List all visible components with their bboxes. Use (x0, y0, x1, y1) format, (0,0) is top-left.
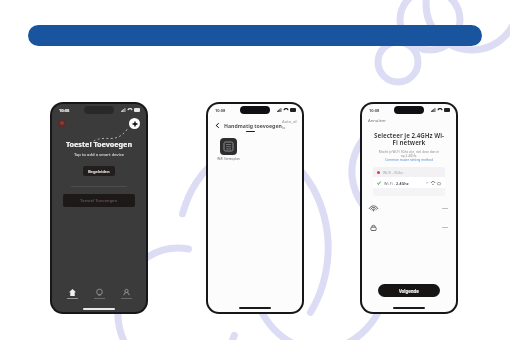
staticText: WiFi Stereoplan (215, 157, 242, 161)
staticText: 10:08 (59, 108, 70, 113)
staticText: Handmatig toevoegen (224, 122, 282, 129)
button[interactable]: Begeleiden (83, 166, 115, 176)
button[interactable]: Volgende (378, 284, 440, 297)
button[interactable]: Annuleer (368, 118, 386, 124)
staticText: Toestel Toevoegen (80, 198, 118, 204)
button[interactable]: Wi-Fi - 5Ghz (377, 167, 441, 177)
staticText: Wi-Fi - (384, 181, 396, 186)
staticText: Wi-Fi - 5Ghz (383, 170, 403, 175)
staticText: × (426, 180, 429, 186)
button[interactable]: Profile (58, 119, 66, 127)
staticText: Begeleiden (88, 169, 110, 174)
button[interactable]: WiFi Stereoplan (215, 138, 242, 161)
button[interactable]: Password (370, 222, 448, 233)
staticText: Volgende (399, 288, 419, 294)
button[interactable] (28, 25, 482, 46)
button[interactable]: Home (60, 289, 84, 299)
button[interactable]: Toestel Toevoegen (63, 194, 135, 207)
staticText: Mocht je Wi-Fi 5Ghz zijn, stel deze dan … (368, 150, 450, 158)
staticText: 10:08 (369, 108, 380, 113)
button[interactable]: Smart (87, 289, 111, 299)
staticText: 10:08 (215, 108, 226, 113)
staticText: 2.4Ghz (396, 181, 409, 186)
staticText: Selecteer je 2.4GHz Wi- Fi netwerk (368, 131, 450, 147)
button[interactable]: Back (213, 121, 221, 129)
button[interactable]: Wi-Fi name (370, 203, 448, 214)
button[interactable]: Add device (129, 118, 140, 129)
staticText: Tap to add a smart device (52, 152, 146, 158)
button[interactable]: Wi-Fi - (377, 177, 441, 188)
button[interactable]: Auto_alla (282, 119, 297, 131)
staticText: Toestel Toevoegen (52, 139, 146, 149)
button[interactable]: Common router setting method (362, 158, 456, 162)
button[interactable]: Me (114, 289, 138, 299)
